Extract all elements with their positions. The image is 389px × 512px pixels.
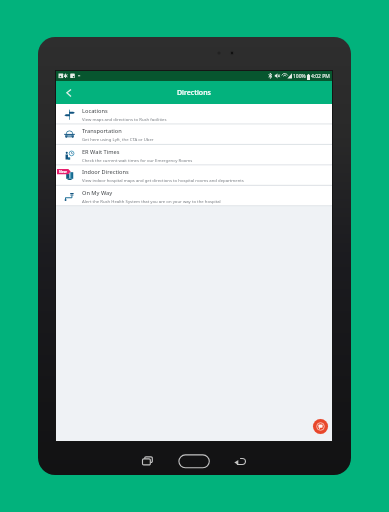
staticText: New — [59, 169, 67, 174]
button[interactable]: Chat — [313, 419, 328, 434]
button[interactable]: ER Wait Times — [56, 145, 332, 165]
button[interactable]: On My Way — [56, 186, 332, 206]
staticText: Indoor Directions — [82, 168, 129, 176]
staticText: Transportation — [82, 127, 122, 135]
staticText: 4:02 PM — [311, 73, 330, 80]
staticText: 100% — [293, 73, 306, 80]
staticText: Get here using Lyft, the CTA or Uber — [82, 136, 154, 142]
staticText: ER Wait Times — [82, 148, 120, 156]
staticText: View indoor hospital maps and get direct… — [82, 177, 244, 183]
staticText: Alert the Rush Health System that you ar… — [82, 198, 221, 204]
button[interactable]: Indoor Directions — [56, 165, 332, 185]
button[interactable]: Locations — [56, 104, 332, 124]
staticText: Directions — [177, 88, 211, 98]
staticText: Locations — [82, 107, 108, 115]
button[interactable]: Transportation — [56, 124, 332, 144]
staticText: On My Way — [82, 189, 113, 197]
staticText: Check the current wait times for our Eme… — [82, 157, 193, 163]
staticText: View maps and directions to Rush facilit… — [82, 116, 167, 122]
button[interactable]: Back — [56, 81, 80, 104]
